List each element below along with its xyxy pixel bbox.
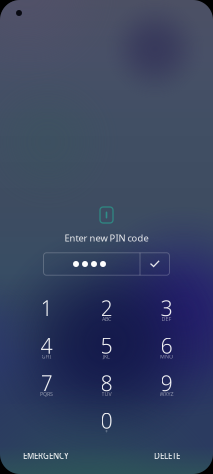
staticText: + <box>105 428 108 435</box>
staticText: 0 <box>100 406 112 435</box>
button[interactable]: 2 <box>76 289 136 327</box>
button[interactable]: EMERGENCY <box>0 443 92 469</box>
staticText: 4 <box>40 331 52 360</box>
staticText: 6 <box>160 331 172 360</box>
staticText: 2 <box>100 294 112 322</box>
button[interactable]: 0 <box>76 402 136 440</box>
staticText: EMERGENCY <box>23 451 69 461</box>
button[interactable]: 9 <box>136 364 196 402</box>
button[interactable]: Confirm PIN <box>140 253 169 275</box>
button[interactable]: 7 <box>16 364 76 402</box>
staticText: DELETE <box>154 451 180 461</box>
staticText: 8 <box>100 369 112 397</box>
staticText: 3 <box>160 294 172 322</box>
staticText: DEF <box>161 315 171 323</box>
staticText: ABC <box>102 315 111 323</box>
button[interactable]: 5 <box>76 327 136 365</box>
button[interactable]: 3 <box>136 289 196 327</box>
staticText: Enter new PIN code <box>64 232 148 244</box>
staticText: PQRS <box>40 390 53 398</box>
staticText: WXYZ <box>159 390 173 398</box>
staticText: TUV <box>101 390 111 398</box>
button[interactable]: 6 <box>136 327 196 365</box>
staticText: 7 <box>40 369 52 397</box>
staticText: GHI <box>41 353 51 360</box>
staticText: 1 <box>40 294 52 322</box>
staticText: 5 <box>100 331 112 360</box>
staticText: JKL <box>103 353 110 360</box>
button[interactable]: 1 <box>16 289 76 327</box>
staticText: 9 <box>160 369 172 397</box>
button[interactable]: 4 <box>16 327 76 365</box>
staticText: MNO <box>160 353 173 360</box>
button[interactable]: 8 <box>76 364 136 402</box>
button[interactable]: DELETE <box>121 443 213 469</box>
